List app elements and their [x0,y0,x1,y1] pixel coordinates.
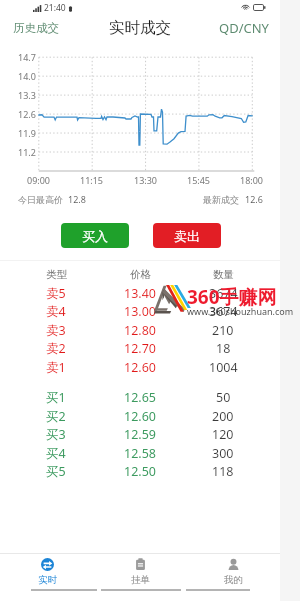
button[interactable] [0,302,280,320]
staticText: 18:00 [240,174,264,186]
staticText: 12.6 [18,108,36,120]
staticText: 11.2 [18,146,36,158]
staticText: 14.7 [18,51,36,63]
staticText: 卖出 [174,228,200,244]
staticText: 买1 [46,389,66,406]
button[interactable]: 卖出 [153,223,221,248]
staticText: 12.6 [245,193,263,205]
staticText: 15:45 [187,174,211,186]
staticText: 12.60 [124,408,156,425]
staticText: 类型 [46,268,67,281]
button[interactable]: 历史成交 [0,16,69,40]
button[interactable] [0,321,280,339]
staticText: 买2 [46,408,66,425]
staticText: 卖4 [46,303,66,320]
staticText: 今日最高价 [18,194,63,205]
staticText: 18 [216,340,231,357]
staticText: 买入 [82,228,108,244]
button[interactable] [0,462,280,480]
button[interactable] [0,425,280,443]
staticText: 卖5 [46,285,66,302]
button[interactable]: 实时 [0,554,94,587]
button[interactable]: 我的 [187,554,280,587]
button[interactable]: 买入 [61,223,129,248]
staticText: 历史成交 [13,21,59,35]
staticText: 13.40 [124,285,156,302]
staticText: 118 [212,463,234,480]
staticText: 210 [212,322,234,339]
staticText: 13.3 [18,89,36,101]
staticText: 200 [212,408,234,425]
staticText: 09:00 [27,174,51,186]
staticText: 买3 [46,426,66,443]
staticText: 12.58 [124,445,156,462]
button[interactable]: QD/CNY [209,14,280,42]
staticText: 实时 [38,574,57,586]
staticText: 买4 [46,445,66,462]
staticText: 50 [216,389,231,406]
staticText: www.360shouzhuan.com [187,305,294,317]
staticText: 卖1 [46,359,66,376]
staticText: 我的 [224,574,243,586]
staticText: 卖3 [46,322,66,339]
staticText: 120 [212,426,234,443]
staticText: 买5 [46,463,66,480]
staticText: 360手赚网 [187,284,277,310]
staticText: 13.00 [124,303,156,320]
button[interactable] [0,284,280,302]
staticText: 价格 [130,268,151,281]
staticText: 12.8 [68,193,86,205]
staticText: 卖2 [46,340,66,357]
staticText: 1004 [209,359,238,376]
staticText: 300 [212,445,234,462]
staticText: 3674 [209,303,238,320]
staticText: 最新成交 [203,194,239,205]
staticText: 挂单 [131,574,150,586]
button[interactable] [0,388,280,406]
button[interactable]: 挂单 [94,554,187,587]
button[interactable] [0,358,280,376]
staticText: 12.65 [124,389,156,406]
staticText: 数量 [213,268,234,281]
staticText: 14.0 [18,70,36,82]
staticText: 12.80 [124,322,156,339]
staticText: 12.60 [124,359,156,376]
button[interactable] [0,444,280,462]
staticText: 11.9 [18,127,36,139]
staticText: 13:30 [134,174,158,186]
button[interactable] [0,339,280,357]
staticText: 11:15 [80,174,104,186]
staticText: 12.59 [124,426,156,443]
staticText: 21:40 [44,2,66,14]
staticText: 3674 [209,285,238,302]
staticText: 12.70 [124,340,156,357]
button[interactable] [0,407,280,425]
staticText: QD/CNY [219,19,269,37]
staticText: 实时成交 [109,18,171,38]
staticText: 12.50 [124,463,156,480]
